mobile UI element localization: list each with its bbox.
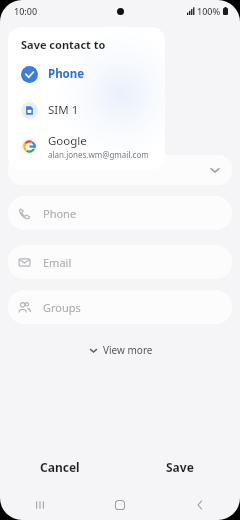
button[interactable]: Phone	[8, 196, 232, 230]
button[interactable]: Cancel	[0, 450, 120, 484]
staticText: Phone	[48, 66, 85, 82]
staticText: 100%	[197, 5, 221, 17]
staticText: alan.jones.wm@gmail.com	[48, 149, 149, 160]
button[interactable]: Back	[160, 490, 240, 520]
staticText: Google	[48, 133, 87, 149]
staticText: Save contact to	[21, 37, 106, 52]
button[interactable]: Phone	[8, 57, 165, 91]
staticText: Phone	[43, 206, 77, 221]
button[interactable]: Email	[8, 245, 232, 279]
staticText: Cancel	[40, 459, 80, 475]
button[interactable]: Save	[120, 450, 240, 484]
staticText: Email	[43, 255, 72, 270]
button[interactable]: Groups	[8, 290, 232, 324]
button[interactable]: Google	[8, 129, 165, 163]
button[interactable]: Expand name	[8, 155, 232, 185]
button[interactable]: View more	[0, 339, 240, 361]
button[interactable]: Home	[80, 490, 160, 520]
other: Expand name	[208, 163, 222, 177]
staticText: View more	[103, 343, 153, 357]
button[interactable]: SIM 1	[8, 93, 165, 127]
staticText: Save	[166, 459, 194, 475]
staticText: 10:00	[14, 5, 38, 17]
staticText: SIM 1	[48, 102, 79, 118]
button[interactable]: Recent apps	[0, 490, 80, 520]
staticText: Groups	[43, 300, 81, 315]
